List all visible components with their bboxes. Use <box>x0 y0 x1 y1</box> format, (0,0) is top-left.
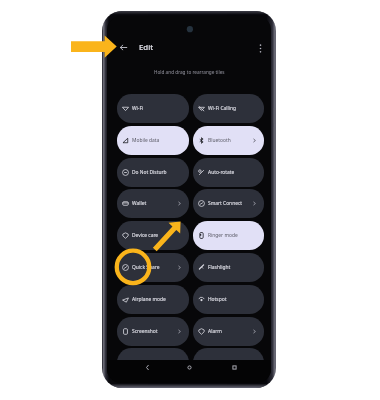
button[interactable]: Wi-Fi <box>117 94 189 123</box>
staticText: Ringer mode <box>208 232 238 239</box>
staticText: Quick Share <box>132 264 160 271</box>
staticText: Wallet <box>132 200 147 207</box>
staticText: Alarm <box>208 328 222 335</box>
button[interactable]: Home <box>180 358 198 376</box>
staticText: Smart Connect <box>208 200 243 207</box>
button[interactable]: Flashlight <box>193 253 264 282</box>
button[interactable]: Mobile data <box>117 126 189 155</box>
button[interactable]: More options <box>252 40 268 56</box>
button[interactable]: Device care <box>117 221 189 250</box>
staticText: Bluetooth <box>208 137 231 144</box>
staticText: Edit <box>139 42 153 53</box>
staticText: Screenshot <box>132 328 158 335</box>
staticText: Flashlight <box>208 264 231 271</box>
staticText: Auto-rotate <box>208 169 235 176</box>
button[interactable]: Back <box>138 358 156 376</box>
button[interactable]: Bluetooth <box>193 126 264 155</box>
button[interactable]: Quick Share <box>117 253 189 282</box>
button[interactable]: Airplane mode <box>117 285 189 314</box>
staticText: Wi-Fi <box>132 105 144 112</box>
button[interactable]: Wallet <box>117 189 189 218</box>
button[interactable]: Do Not Disturb <box>117 158 189 187</box>
staticText: Do Not Disturb <box>132 169 167 176</box>
staticText: Wi-Fi Calling <box>208 105 237 112</box>
button[interactable]: Screenshot <box>117 317 189 346</box>
staticText: Airplane mode <box>132 296 166 303</box>
button[interactable]: Alarm <box>193 317 264 346</box>
button[interactable] <box>193 348 264 360</box>
staticText: Hold and drag to rearrange tiles <box>154 69 225 75</box>
staticText: Hotspot <box>208 296 227 303</box>
staticText: Device care <box>132 232 159 239</box>
button[interactable]: Hotspot <box>193 285 264 314</box>
staticText: Mobile data <box>132 137 160 144</box>
button[interactable]: Smart Connect <box>193 189 264 218</box>
button[interactable]: Back <box>115 39 131 55</box>
button[interactable]: Ringer mode <box>193 221 264 250</box>
button[interactable]: Wi-Fi Calling <box>193 94 264 123</box>
button[interactable]: Recents <box>225 358 243 376</box>
button[interactable] <box>117 348 189 360</box>
button[interactable]: Auto-rotate <box>193 158 264 187</box>
